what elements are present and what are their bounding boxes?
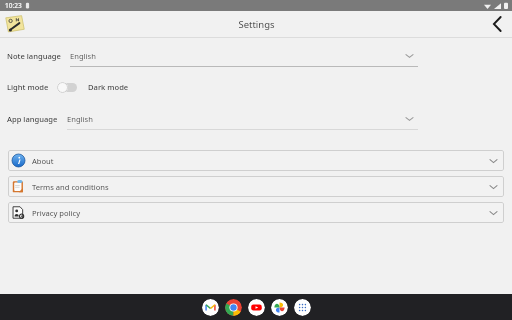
button[interactable]: App icon [4,13,26,35]
staticText: App language [7,114,58,124]
staticText: Dark mode [88,82,129,92]
staticText: Settings [238,18,275,31]
staticText: Light mode [7,82,49,92]
button[interactable]: All apps [294,299,311,316]
staticText: About [32,156,490,166]
button[interactable]: About [8,150,504,171]
button[interactable]: YouTube [248,299,265,316]
staticText: English [70,51,96,61]
staticText: English [67,114,93,124]
staticText: Terms and conditions [32,182,490,192]
button[interactable]: Photos [271,299,288,316]
staticText: 10:23 [5,1,22,10]
button[interactable]: Chrome [225,299,242,316]
button[interactable]: App language [0,108,512,130]
button[interactable]: Terms and conditions [8,176,504,197]
button[interactable]: Gmail [202,299,219,316]
button[interactable]: Privacy policy [8,202,504,223]
button[interactable]: Toggle dark mode [57,80,79,94]
staticText: Privacy policy [32,208,490,218]
button[interactable]: Back [488,15,506,33]
button[interactable]: Note language [0,45,512,67]
staticText: Note language [7,51,61,61]
